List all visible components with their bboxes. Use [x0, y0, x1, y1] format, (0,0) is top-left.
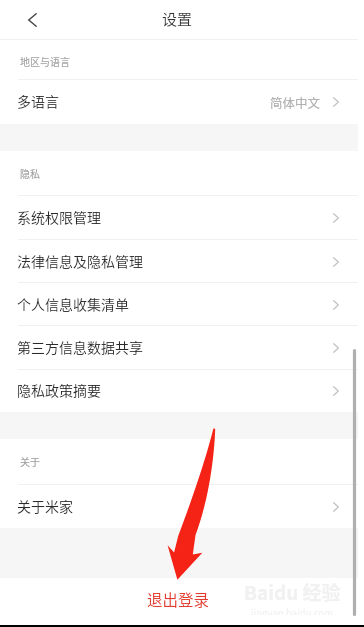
- button[interactable]: 系统权限管理: [0, 196, 364, 240]
- staticText: 个人信息收集清单: [17, 294, 129, 314]
- button[interactable]: Back: [0, 0, 56, 40]
- staticText: 设置: [162, 8, 193, 30]
- staticText: 第三方信息数据共享: [17, 337, 143, 357]
- staticText: 隐私: [20, 166, 40, 180]
- staticText: jingyan.baidu.com: [251, 606, 334, 615]
- button[interactable]: 法律信息及隐私管理: [0, 240, 364, 283]
- staticText: 地区与语言: [20, 54, 70, 68]
- staticText: 隐私政策摘要: [17, 380, 101, 400]
- button[interactable]: 退出登录: [0, 578, 364, 627]
- staticText: 退出登录: [147, 588, 210, 610]
- button[interactable]: 个人信息收集清单: [0, 283, 364, 326]
- staticText: 简体中文: [270, 93, 321, 111]
- staticText: 系统权限管理: [17, 207, 101, 227]
- staticText: 法律信息及隐私管理: [17, 251, 143, 271]
- staticText: 关于: [20, 454, 40, 468]
- staticText: 多语言: [17, 91, 59, 111]
- staticText: 关于米家: [17, 496, 73, 516]
- button[interactable]: 关于米家: [0, 485, 364, 528]
- button[interactable]: 隐私政策摘要: [0, 370, 364, 412]
- staticText: Baidu 经验: [244, 578, 341, 606]
- button[interactable]: 多语言: [0, 80, 364, 124]
- button[interactable]: 第三方信息数据共享: [0, 326, 364, 370]
